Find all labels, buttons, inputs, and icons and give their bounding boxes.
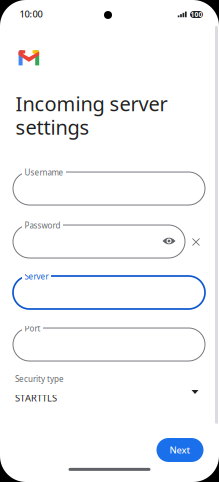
staticText: Next <box>169 444 190 456</box>
staticText: Password <box>24 220 60 231</box>
staticText: Username <box>24 167 63 178</box>
button[interactable]: Next <box>156 438 203 462</box>
staticText: Port <box>24 323 40 334</box>
button[interactable]: STARTTLS <box>15 391 95 405</box>
staticText: Server <box>24 271 48 282</box>
staticText: 10:00 <box>19 8 42 20</box>
staticText: STARTTLS <box>15 392 57 404</box>
staticText: settings <box>15 114 89 140</box>
staticText: 100 <box>190 10 202 19</box>
staticText: Incoming server <box>15 90 167 117</box>
button[interactable]: Clear password <box>186 232 206 252</box>
button[interactable]: Show password <box>158 230 180 252</box>
staticText: Security type <box>15 374 64 384</box>
